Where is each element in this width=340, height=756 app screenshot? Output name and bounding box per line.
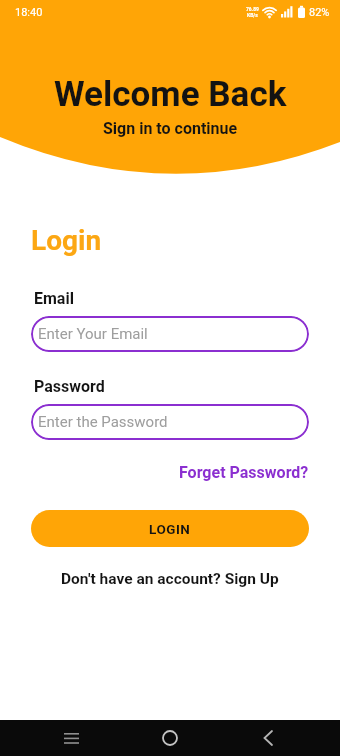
staticText: Sign in to continue — [103, 119, 238, 138]
staticText: Enter the Password — [38, 413, 168, 431]
button[interactable] — [246, 720, 290, 756]
button[interactable]: LOGIN — [31, 510, 309, 547]
staticText: Welcome Back — [54, 74, 287, 115]
button[interactable]: Don't have an account? Sign Up — [61, 570, 279, 588]
button[interactable]: Enter the Password — [31, 404, 309, 440]
staticText: 82% — [309, 6, 330, 19]
staticText: KB/s — [247, 12, 258, 18]
staticText: Email — [34, 289, 74, 308]
button[interactable]: Enter Your Email — [31, 316, 309, 352]
button[interactable]: Forget Password? — [179, 463, 309, 482]
staticText: Enter Your Email — [38, 325, 148, 343]
staticText: LOGIN — [149, 521, 191, 537]
staticText: Password — [34, 377, 105, 396]
button[interactable] — [49, 720, 93, 756]
staticText: 18:40 — [15, 6, 43, 19]
button[interactable] — [148, 720, 192, 756]
staticText: Login — [31, 224, 102, 257]
staticText: 76.89 — [246, 6, 259, 12]
